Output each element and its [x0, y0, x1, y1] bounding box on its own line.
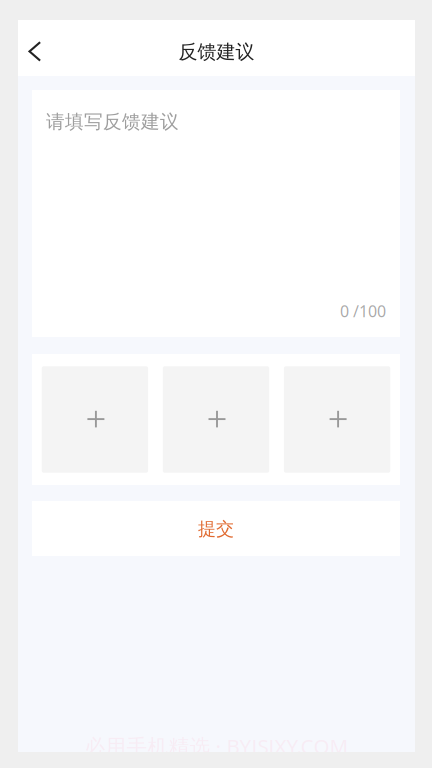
staticText: 提交: [198, 518, 234, 540]
button[interactable]: 添加图片: [42, 366, 148, 473]
textField[interactable]: 请填写反馈建议: [32, 90, 400, 337]
staticText: 0 /100: [340, 300, 386, 322]
staticText: 必用手机精选 · BYJSJXY.COM: [84, 732, 348, 760]
button[interactable]: 添加图片: [163, 366, 269, 473]
button[interactable]: 提交: [32, 501, 400, 556]
button[interactable]: 返回: [18, 25, 60, 71]
staticText: 反馈建议: [178, 40, 254, 64]
button[interactable]: 添加图片: [284, 366, 390, 473]
staticText: 请填写反馈建议: [46, 110, 179, 133]
